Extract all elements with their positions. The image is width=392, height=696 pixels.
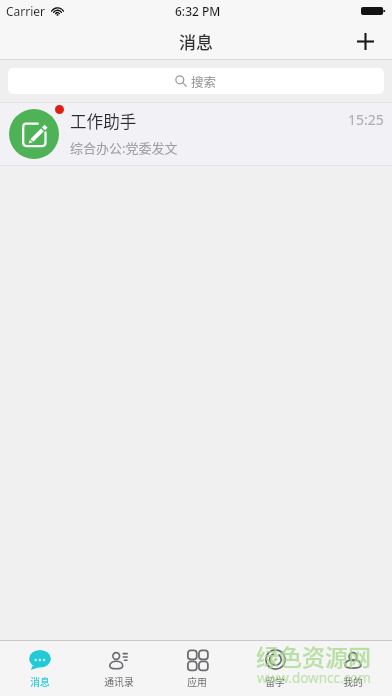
staticText: www.downcc.com (257, 669, 371, 687)
button[interactable]: 搜索 (8, 68, 384, 94)
staticText: 15:25 (348, 110, 384, 129)
staticText: 我的 (343, 675, 363, 689)
staticText: 6:32 PM (175, 3, 221, 19)
button[interactable]: Add (338, 22, 392, 60)
button[interactable]: 留学 (236, 641, 314, 696)
staticText: 搜索 (191, 72, 217, 90)
button[interactable]: 通讯录 (79, 641, 158, 696)
staticText: 消息 (30, 675, 50, 689)
staticText: 绿色资源网 (256, 639, 371, 672)
staticText: Carrier (6, 3, 46, 19)
staticText: 消息 (179, 29, 213, 54)
staticText: 工作助手 (70, 109, 137, 133)
button[interactable]: 消息 (0, 641, 79, 696)
button[interactable]: 我的 (314, 641, 392, 696)
button[interactable]: 工作助手 (0, 103, 392, 165)
staticText: 综合办公:党委发文 (70, 138, 178, 157)
staticText: 应用 (187, 675, 207, 689)
button[interactable]: 应用 (158, 641, 236, 696)
staticText: 留学 (265, 675, 285, 689)
staticText: 通讯录 (104, 675, 134, 689)
